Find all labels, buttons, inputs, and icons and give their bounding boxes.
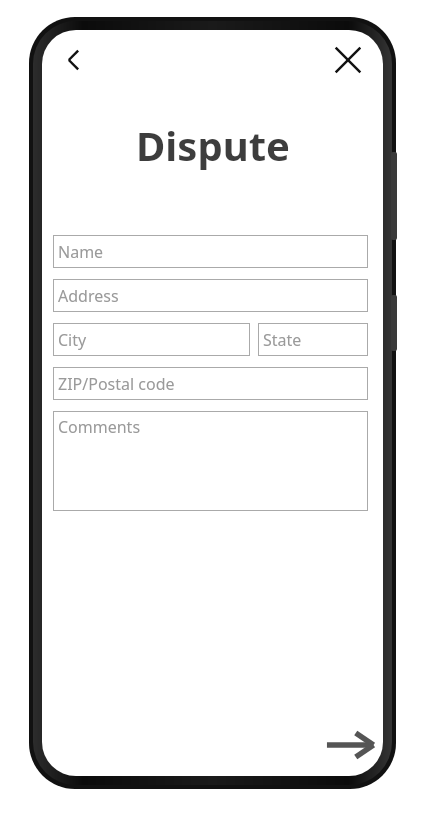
staticText: State <box>263 329 302 351</box>
button[interactable]: City <box>53 323 250 356</box>
button[interactable]: Address <box>53 279 368 312</box>
button[interactable]: ZIP/Postal code <box>53 367 368 400</box>
staticText: Dispute <box>136 118 290 172</box>
button[interactable]: Back <box>52 38 96 82</box>
button[interactable]: Next <box>319 716 381 768</box>
staticText: City <box>58 329 87 351</box>
staticText: Comments <box>58 416 141 438</box>
button[interactable]: Close <box>326 38 370 82</box>
staticText: Name <box>58 241 104 263</box>
button[interactable]: State <box>258 323 368 356</box>
button[interactable]: Comments <box>53 411 368 511</box>
button[interactable]: Name <box>53 235 368 268</box>
staticText: Address <box>58 285 119 307</box>
staticText: ZIP/Postal code <box>58 373 175 395</box>
